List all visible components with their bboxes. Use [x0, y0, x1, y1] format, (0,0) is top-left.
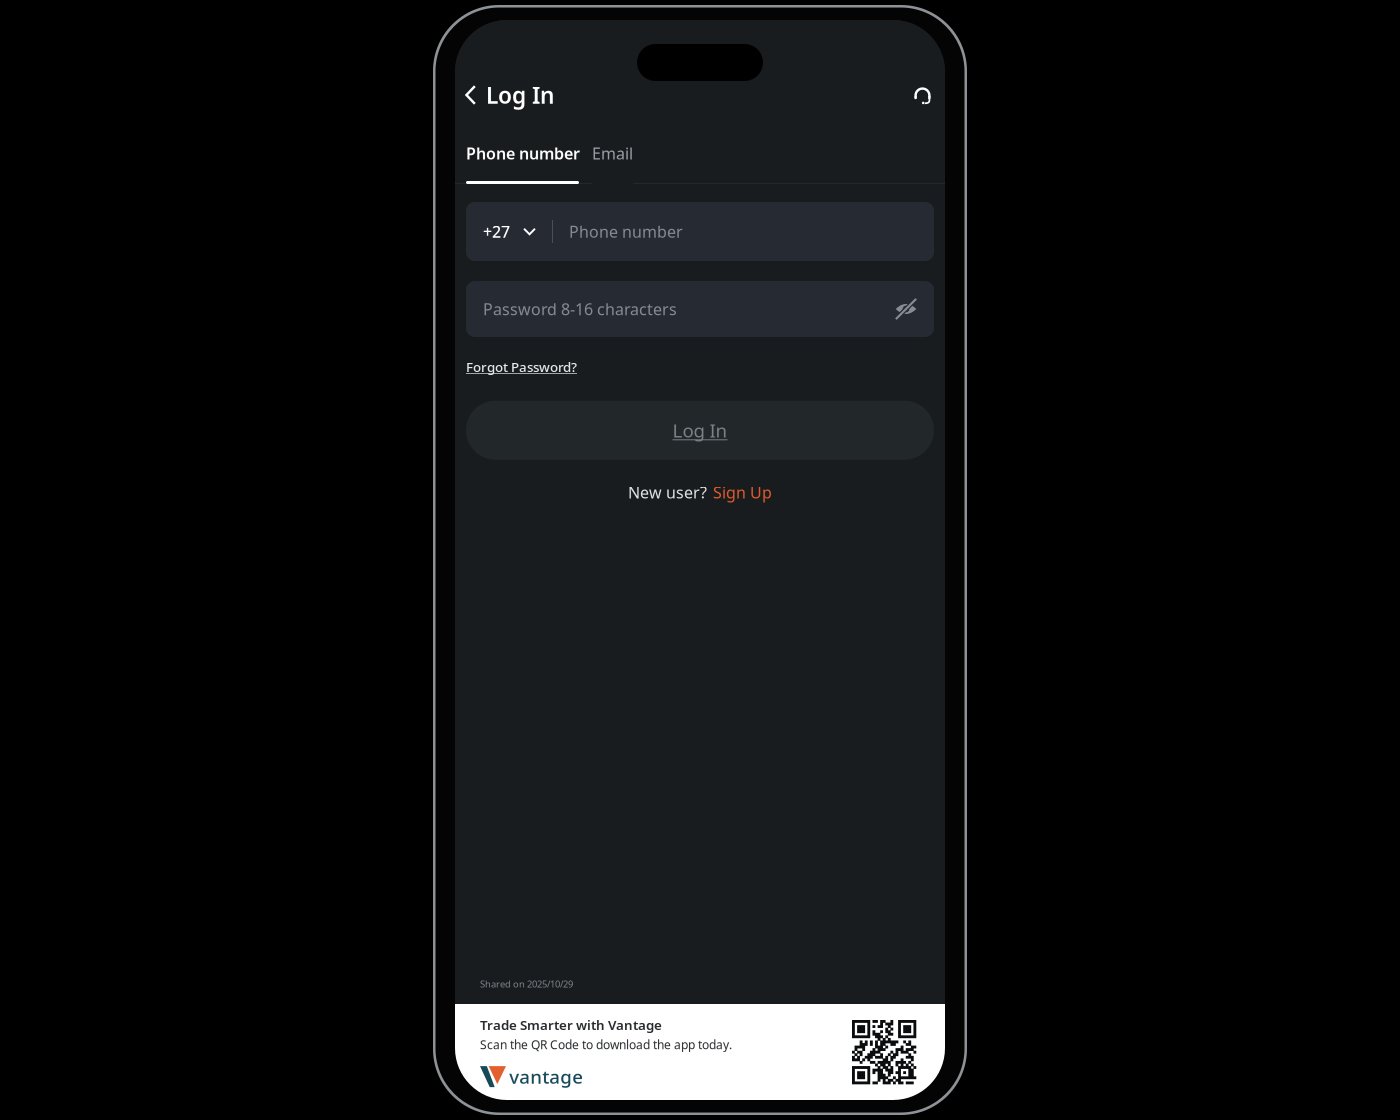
button[interactable]: Sign Up	[713, 482, 772, 503]
button[interactable]: Log In	[466, 401, 934, 460]
button[interactable]: Log In	[455, 75, 564, 115]
staticText: Phone number	[569, 221, 683, 242]
staticText: Sign Up	[713, 482, 772, 503]
button[interactable]: Email	[592, 115, 633, 184]
staticText: Password 8-16 characters	[483, 298, 677, 320]
button[interactable]: Phone number	[455, 115, 592, 184]
staticText: Forgot Password?	[466, 358, 577, 376]
button[interactable]: +27	[466, 202, 552, 261]
staticText: Trade Smarter with Vantage	[480, 1016, 662, 1034]
button[interactable]: Customer support	[900, 75, 945, 115]
button[interactable]: Show password	[883, 281, 934, 337]
staticText: Log In	[672, 418, 727, 443]
staticText: vantage	[509, 1064, 583, 1089]
staticText: Phone number	[466, 143, 580, 164]
staticText: Email	[592, 143, 633, 164]
staticText: Shared on 2025/10/29	[480, 978, 573, 990]
button[interactable]: Forgot Password?	[466, 355, 577, 379]
staticText: Log In	[486, 80, 554, 110]
staticText: Scan the QR Code to download the app tod…	[480, 1037, 732, 1053]
staticText: New user?	[628, 482, 707, 503]
staticText: +27	[483, 221, 510, 242]
